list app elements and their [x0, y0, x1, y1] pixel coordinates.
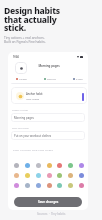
button[interactable]: icon 19	[66, 181, 74, 189]
button[interactable]: icon 2	[34, 161, 42, 169]
button[interactable]: icon 11	[55, 171, 63, 179]
button[interactable]: icon 16	[34, 181, 42, 189]
staticText: 92% hit	[47, 77, 56, 80]
button[interactable]: icon 1	[23, 161, 31, 169]
staticText: Tiny actions + real anchors. Built on Fi…	[4, 36, 46, 44]
button[interactable]: Put on your workout clothes	[11, 131, 85, 140]
staticText: After coffee	[26, 97, 40, 100]
button[interactable]: icon 12	[66, 171, 74, 179]
staticText: 18 day	[19, 77, 27, 80]
staticText: Design habits that actually stick.	[4, 5, 60, 33]
staticText: Sources · Tiny habits	[37, 212, 66, 216]
staticText: 5 min	[76, 77, 83, 80]
button[interactable]: icon 15	[23, 181, 31, 189]
staticText: Morning pages	[10, 64, 88, 68]
button[interactable]: icon 7	[12, 171, 20, 179]
staticText: Put on your workout clothes	[14, 134, 52, 138]
button[interactable]: icon 5	[66, 161, 74, 169]
button[interactable]: icon 17	[45, 181, 53, 189]
button[interactable]: icon 20	[77, 181, 85, 189]
button[interactable]: icon 8	[23, 171, 31, 179]
staticText: Anchor habit	[26, 92, 43, 96]
button[interactable]: Morning pages	[11, 113, 85, 122]
staticText: 9:54	[13, 55, 19, 59]
button[interactable]: Habit icon	[10, 60, 88, 84]
button[interactable]: icon 9	[34, 171, 42, 179]
button[interactable]: icon 4	[55, 161, 63, 169]
staticText: PICK AN ICON FOR THIS HABIT	[13, 148, 54, 151]
staticText: THE ANCHOR	[12, 126, 29, 129]
button[interactable]: icon 0	[12, 161, 20, 169]
button[interactable]: Save changes	[14, 197, 82, 207]
button[interactable]: icon 6	[77, 161, 85, 169]
staticText: Save changes	[38, 200, 59, 204]
button[interactable]: icon 10	[45, 171, 53, 179]
staticText: HABIT NAME	[12, 108, 28, 111]
button[interactable]: Habit icon	[15, 62, 27, 74]
button[interactable]: icon 18	[55, 181, 63, 189]
button[interactable]: Anchor habit	[11, 87, 87, 104]
button[interactable]: icon 14	[12, 181, 20, 189]
staticText: Morning pages	[14, 116, 34, 120]
button[interactable]: icon 13	[77, 171, 85, 179]
button[interactable]: icon 3	[45, 161, 53, 169]
